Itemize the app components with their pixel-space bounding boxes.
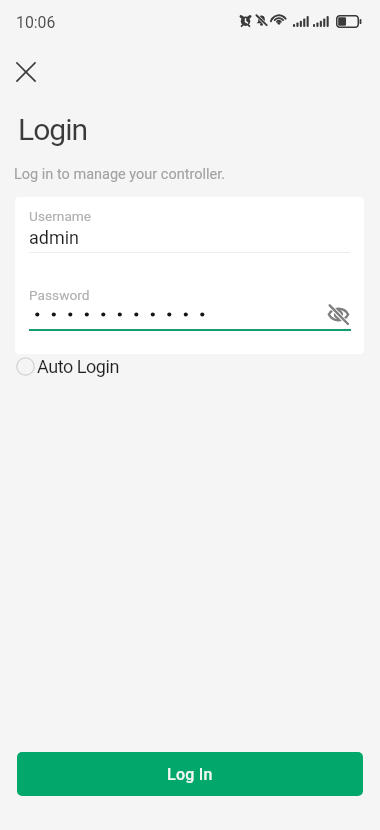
staticText: Log In — [167, 765, 213, 784]
staticText: Username — [29, 208, 92, 224]
staticText: admin — [29, 227, 80, 248]
staticText: Auto Login — [37, 356, 119, 377]
staticText: Log in to manage your controller. — [14, 166, 226, 183]
button[interactable]: Log In — [17, 752, 363, 796]
staticText: 10:06 — [16, 13, 56, 32]
staticText: Password — [29, 287, 90, 303]
staticText: Login — [18, 112, 88, 147]
button[interactable]: Show password — [323, 299, 353, 329]
button[interactable]: Auto Login — [16, 353, 119, 379]
button[interactable]: Close — [3, 49, 48, 94]
